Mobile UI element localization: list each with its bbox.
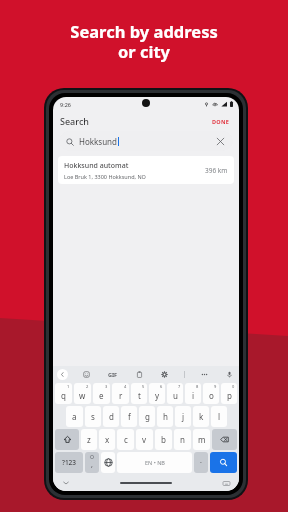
button[interactable]: n — [174, 429, 191, 450]
button[interactable]: Back — [57, 369, 68, 380]
button[interactable]: EN • NB — [117, 452, 192, 473]
staticText: o — [209, 390, 214, 401]
staticText: h — [163, 411, 168, 422]
button[interactable]: GIF — [106, 369, 120, 380]
staticText: Loe Bruk 1, 3300 Hokksund, NO — [64, 173, 146, 180]
staticText: c — [124, 434, 128, 445]
staticText: x — [105, 434, 110, 445]
button[interactable]: Clipboard — [134, 369, 145, 380]
staticText: y — [155, 390, 160, 401]
staticText: s — [91, 411, 95, 422]
button[interactable]: b — [155, 429, 172, 450]
staticText: e — [99, 390, 104, 401]
staticText: l — [218, 411, 221, 422]
button[interactable]: e — [93, 383, 110, 404]
staticText: z — [87, 434, 91, 445]
staticText: ?123 — [62, 458, 77, 467]
button[interactable]: i — [185, 383, 201, 404]
staticText: p — [227, 390, 232, 401]
button[interactable]: Change language — [101, 452, 115, 473]
staticText: 4 — [124, 384, 127, 389]
staticText: Search — [60, 115, 89, 127]
staticText: GIF — [108, 371, 118, 378]
button[interactable]: t — [131, 383, 147, 404]
staticText: t — [138, 390, 141, 401]
button[interactable]: x — [99, 429, 115, 450]
button[interactable]: p — [221, 383, 237, 404]
button[interactable]: Clear search — [215, 136, 226, 147]
staticText: 9:26 — [60, 101, 71, 108]
staticText: u — [173, 390, 178, 401]
button[interactable]: w — [74, 383, 91, 404]
staticText: d — [109, 411, 114, 422]
staticText: Search by address or city — [70, 20, 218, 63]
button[interactable]: s — [85, 406, 101, 427]
button[interactable]: f — [121, 406, 137, 427]
staticText: 6 — [160, 384, 163, 389]
button[interactable]: a — [66, 406, 83, 427]
button[interactable]: h — [157, 406, 173, 427]
staticText: v — [142, 434, 147, 445]
button[interactable]: Search — [210, 452, 237, 473]
button[interactable]: Stickers — [81, 369, 92, 380]
staticText: EN • NB — [145, 459, 165, 466]
staticText: 3 — [105, 384, 108, 389]
button[interactable]: k — [193, 406, 209, 427]
button[interactable]: Switch keyboard — [221, 478, 231, 488]
staticText: n — [180, 434, 185, 445]
button[interactable]: Hokksund automat — [58, 156, 234, 184]
staticText: a — [72, 411, 77, 422]
staticText: 396 km — [205, 166, 228, 175]
button[interactable]: q — [55, 383, 72, 404]
button[interactable]: DONE — [210, 116, 232, 127]
button[interactable]: Voice input — [224, 369, 235, 380]
button[interactable]: ?123 — [55, 452, 83, 473]
staticText: , — [91, 460, 93, 470]
button[interactable]: m — [193, 429, 210, 450]
button[interactable]: z — [81, 429, 97, 450]
staticText: 0 — [232, 384, 235, 389]
staticText: Hokksund — [79, 136, 117, 147]
button[interactable]: Shift — [55, 429, 79, 450]
staticText: q — [61, 390, 66, 401]
staticText: 1 — [67, 384, 70, 389]
button[interactable]: More options — [199, 369, 210, 380]
staticText: 9 — [214, 384, 217, 389]
staticText: k — [199, 411, 204, 422]
button[interactable]: c — [117, 429, 134, 450]
button[interactable]: u — [167, 383, 183, 404]
staticText: f — [128, 411, 131, 422]
button[interactable]: l — [211, 406, 227, 427]
staticText: 8 — [196, 384, 199, 389]
staticText: 7 — [178, 384, 181, 389]
staticText: DONE — [212, 118, 230, 125]
staticText: w — [79, 390, 86, 401]
staticText: m — [198, 434, 206, 445]
staticText: i — [192, 390, 195, 401]
staticText: r — [119, 390, 123, 401]
staticText: 2 — [86, 384, 89, 389]
button[interactable]: r — [112, 383, 129, 404]
staticText: . — [200, 456, 202, 466]
staticText: j — [182, 411, 185, 422]
button[interactable]: Hide keyboard — [61, 478, 71, 488]
button[interactable]: Comma — [85, 452, 99, 473]
staticText: g — [145, 411, 150, 422]
button[interactable]: Hokksund — [59, 131, 233, 151]
button[interactable]: Period — [194, 452, 208, 473]
staticText: 5 — [142, 384, 145, 389]
staticText: Hokksund automat — [64, 161, 129, 171]
button[interactable]: g — [139, 406, 155, 427]
button[interactable]: d — [103, 406, 119, 427]
button[interactable]: y — [149, 383, 165, 404]
staticText: b — [161, 434, 166, 445]
button[interactable]: j — [175, 406, 191, 427]
button[interactable]: v — [136, 429, 153, 450]
button[interactable]: Backspace — [212, 429, 237, 450]
button[interactable]: Settings — [159, 369, 170, 380]
button[interactable]: o — [203, 383, 219, 404]
